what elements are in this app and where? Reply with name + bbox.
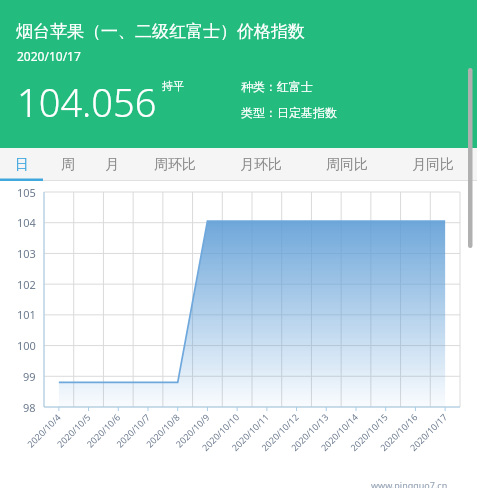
staticText: 月环比 [240,156,282,174]
staticText: 2020/10/17 [17,48,81,64]
button[interactable]: 周 [46,148,90,181]
staticText: 类型：日定基指数 [241,105,337,120]
staticText: 104.056 [17,76,157,128]
staticText: 周同比 [326,156,368,174]
staticText: 持平 [162,79,184,93]
button[interactable]: 周同比 [316,148,378,181]
staticText: 日 [15,156,29,174]
staticText: 月同比 [412,156,454,174]
staticText: 月 [105,156,119,174]
staticText: 烟台苹果（一、二级红富士）价格指数 [16,21,305,42]
button[interactable]: 日 [0,148,44,181]
button[interactable]: 周环比 [144,148,206,181]
button[interactable]: 月同比 [402,148,464,181]
staticText: 周环比 [154,156,196,174]
staticText: 种类：红富士 [241,79,313,94]
button[interactable]: 月环比 [230,148,292,181]
button[interactable]: 月 [90,148,134,181]
staticText: 周 [61,156,75,174]
